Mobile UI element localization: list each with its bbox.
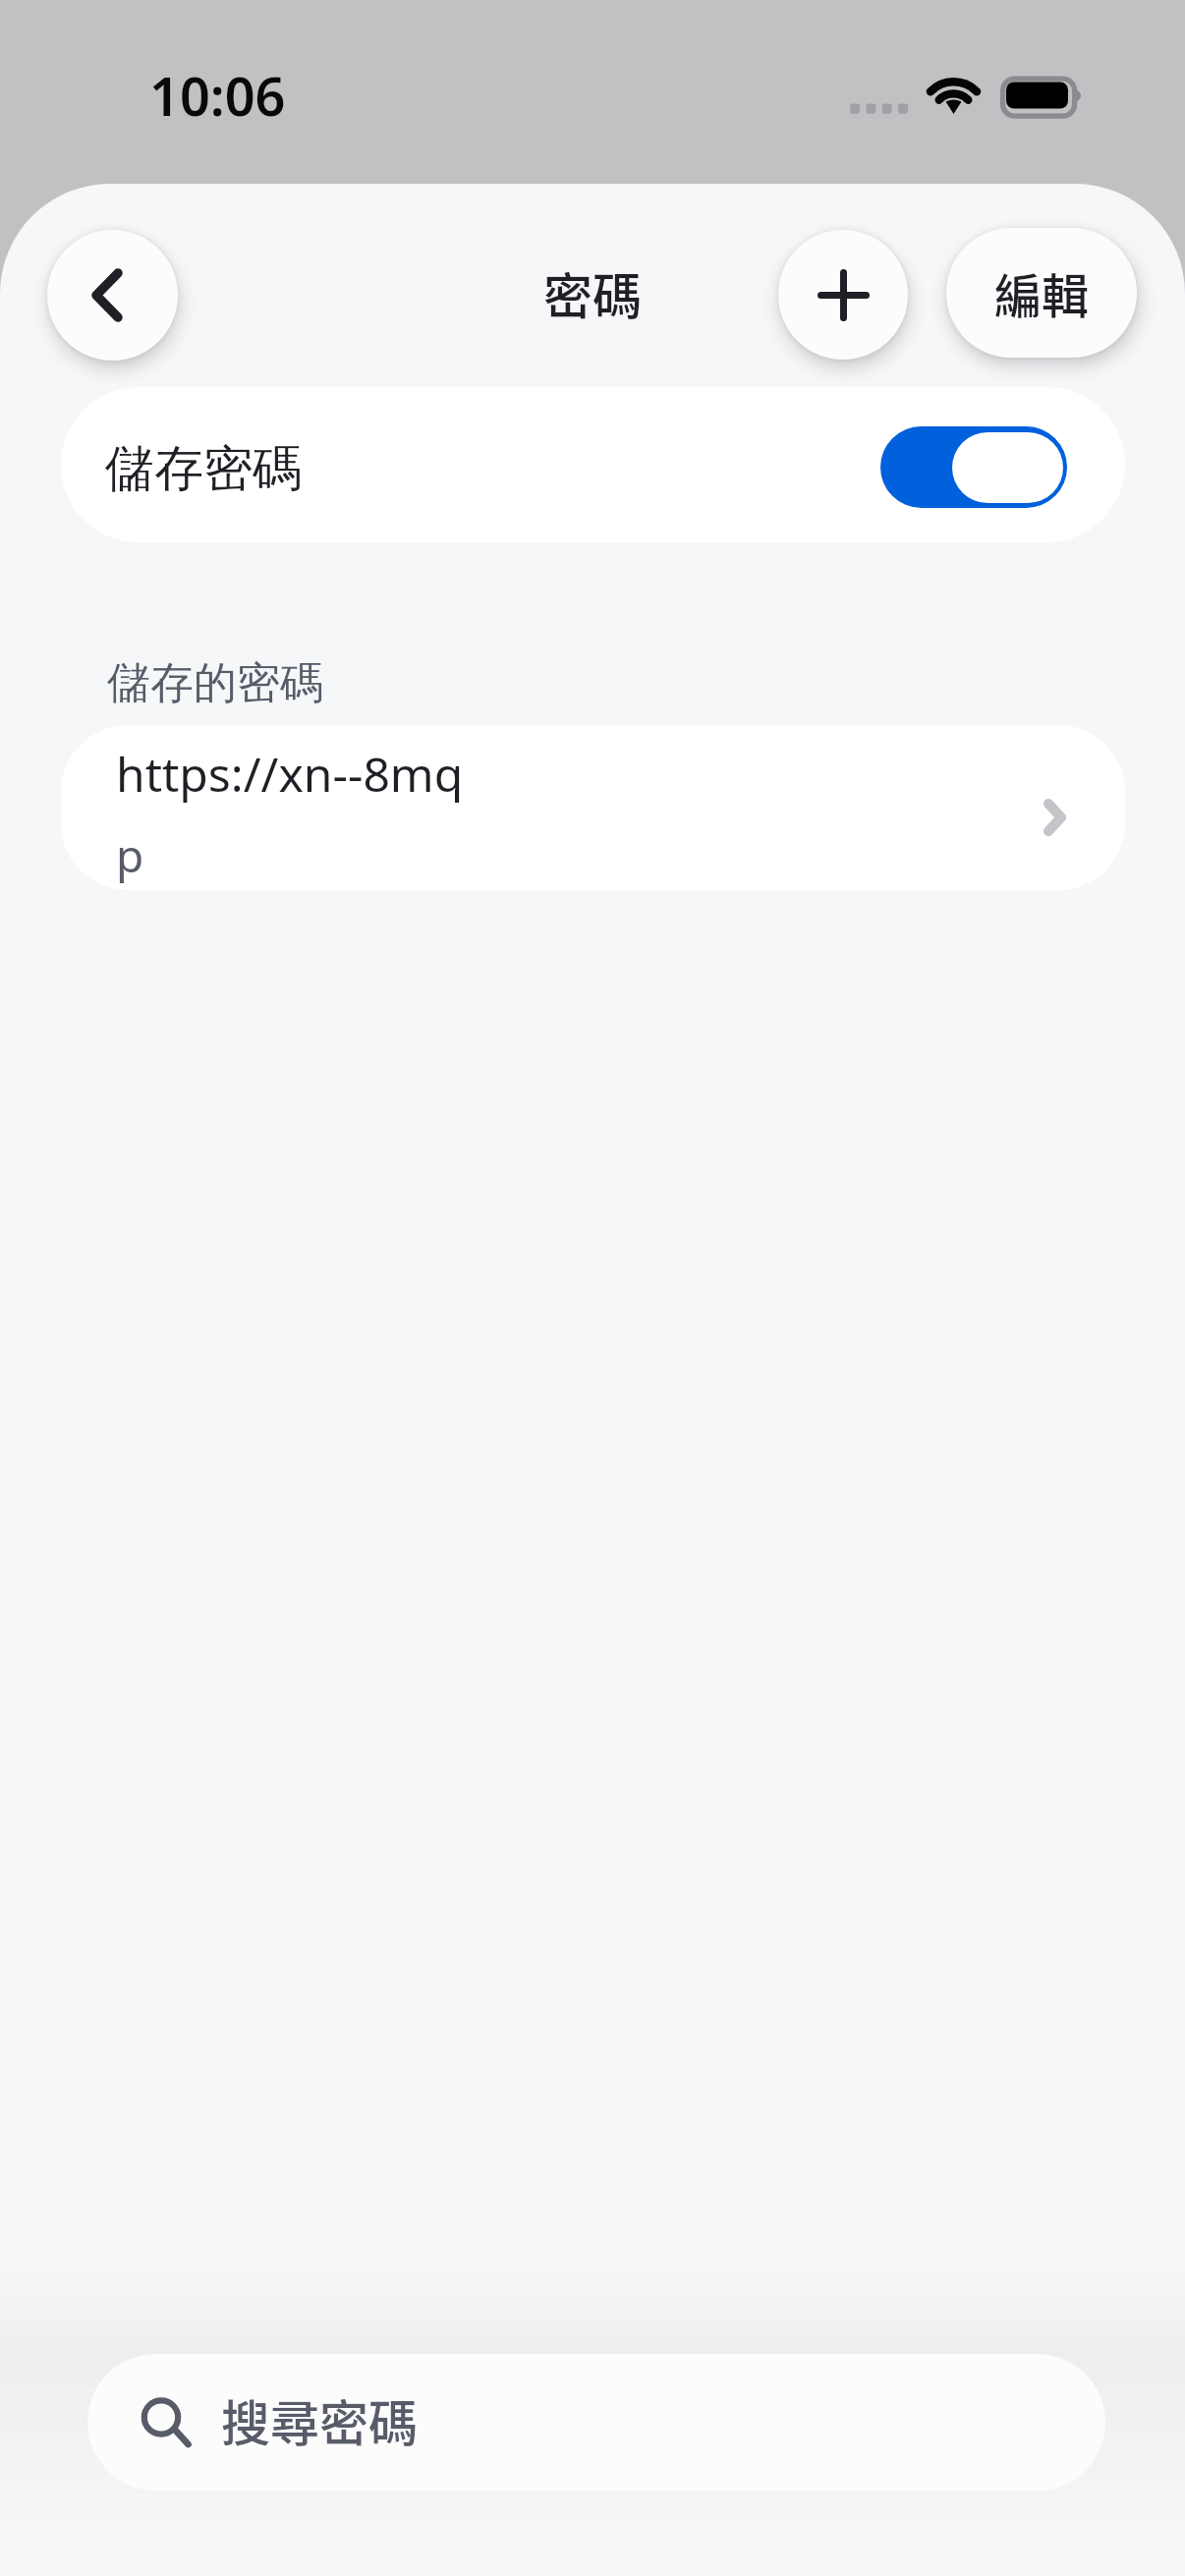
button[interactable]: Back: [47, 230, 178, 361]
button[interactable]: https://xn--8mq: [61, 725, 1125, 890]
staticText: 儲存密碼: [105, 438, 302, 500]
button[interactable]: Save passwords: [880, 426, 1067, 508]
staticText: 密碼: [543, 257, 642, 328]
button[interactable]: 搜尋密碼: [87, 2354, 1105, 2491]
staticText: 搜尋密碼: [221, 2384, 418, 2455]
staticText: 編輯: [994, 258, 1090, 327]
button[interactable]: 儲存密碼: [61, 387, 1125, 542]
staticText: 10:06: [149, 59, 286, 132]
button[interactable]: 編輯: [946, 228, 1137, 358]
button[interactable]: Add password: [778, 230, 908, 360]
staticText: https://xn--8mq: [116, 742, 464, 806]
staticText: p: [116, 824, 144, 886]
staticText: 儲存的密碼: [107, 656, 323, 710]
